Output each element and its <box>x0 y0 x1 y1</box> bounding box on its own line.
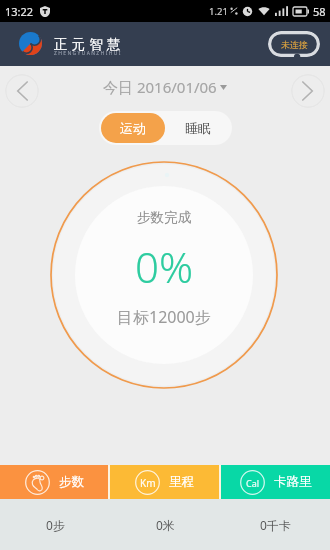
staticText: 13:22 <box>5 4 34 19</box>
staticText: 0米 <box>156 517 175 533</box>
staticText: 运动 <box>120 120 146 136</box>
staticText: 步数 <box>59 474 84 490</box>
button[interactable]: Next day <box>291 74 325 108</box>
staticText: 睡眠 <box>185 120 211 136</box>
button[interactable]: 今日 2016/01/06 <box>103 77 227 97</box>
staticText: 0% <box>135 238 194 295</box>
staticText: 0步 <box>46 517 65 533</box>
staticText: 正元智慧 <box>54 36 125 53</box>
staticText: ZHENGYUANZHIHUI <box>54 50 122 57</box>
staticText: 里程 <box>169 474 194 490</box>
staticText: 今日 2016/01/06 <box>103 77 217 97</box>
staticText: 目标12000步 <box>117 306 211 328</box>
button[interactable]: Cal <box>221 465 330 499</box>
staticText: 0千卡 <box>260 517 291 533</box>
staticText: 58 <box>313 4 326 19</box>
staticText: 未连接 <box>281 39 308 50</box>
button[interactable]: Km <box>110 465 219 499</box>
button[interactable]: 步数 <box>0 465 108 499</box>
staticText: 步数完成 <box>137 209 192 226</box>
button[interactable]: 运动 <box>101 113 165 143</box>
button[interactable]: Previous day <box>5 74 39 108</box>
staticText: 1.21 <box>209 5 228 18</box>
staticText: 卡路里 <box>274 474 312 490</box>
staticText: Km <box>140 476 156 490</box>
button[interactable]: 睡眠 <box>165 113 230 143</box>
button[interactable]: 未连接 <box>268 31 320 57</box>
staticText: Cal <box>246 477 260 489</box>
